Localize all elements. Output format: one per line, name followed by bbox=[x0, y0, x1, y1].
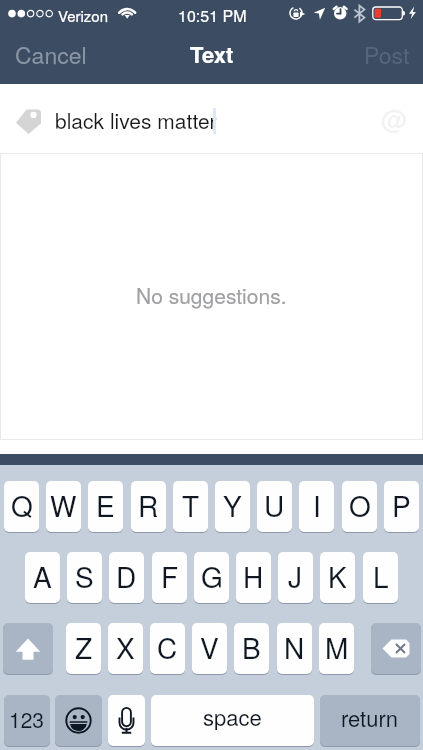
button[interactable]: Backspace bbox=[371, 623, 421, 674]
button[interactable]: space bbox=[151, 695, 314, 746]
staticText: Y bbox=[223, 485, 242, 525]
button[interactable]: Emoji bbox=[55, 695, 102, 746]
staticText: C bbox=[157, 627, 178, 667]
staticText: U bbox=[264, 485, 285, 525]
button[interactable]: F bbox=[152, 552, 187, 603]
staticText: K bbox=[328, 556, 347, 596]
button[interactable]: S bbox=[67, 552, 102, 603]
staticText: N bbox=[284, 627, 305, 667]
button[interactable]: Post bbox=[352, 28, 423, 81]
button[interactable]: A bbox=[25, 552, 60, 603]
button[interactable]: K bbox=[320, 552, 355, 603]
button[interactable]: P bbox=[384, 481, 419, 532]
staticText: Z bbox=[75, 627, 93, 667]
button[interactable]: Cancel bbox=[0, 28, 99, 81]
staticText: P bbox=[392, 485, 411, 525]
staticText: G bbox=[201, 556, 223, 596]
button[interactable]: J bbox=[278, 552, 313, 603]
staticText: E bbox=[96, 485, 115, 525]
staticText: X bbox=[116, 627, 135, 667]
staticText: Q bbox=[11, 485, 33, 525]
button[interactable]: Dictate bbox=[108, 695, 145, 746]
button[interactable]: C bbox=[150, 623, 185, 674]
staticText: T bbox=[182, 485, 200, 525]
staticText: Cancel bbox=[15, 38, 87, 71]
button[interactable]: Y bbox=[215, 481, 250, 532]
staticText: black lives matter bbox=[55, 105, 217, 135]
button[interactable]: Shift bbox=[3, 623, 53, 674]
button[interactable]: D bbox=[109, 552, 144, 603]
button[interactable]: 123 bbox=[4, 695, 50, 746]
button[interactable]: O bbox=[342, 481, 377, 532]
staticText: S bbox=[75, 556, 94, 596]
staticText: No suggestions. bbox=[136, 280, 287, 310]
staticText: W bbox=[50, 485, 77, 525]
staticText: Post bbox=[364, 38, 410, 71]
button[interactable]: W bbox=[46, 481, 81, 532]
staticText: Text bbox=[190, 38, 234, 70]
staticText: @ bbox=[381, 99, 408, 133]
button[interactable]: Q bbox=[4, 481, 39, 532]
button[interactable]: M bbox=[319, 623, 354, 674]
button[interactable]: Mention bbox=[377, 99, 411, 133]
staticText: R bbox=[138, 485, 159, 525]
button[interactable]: E bbox=[88, 481, 123, 532]
staticText: A bbox=[33, 556, 52, 596]
staticText: I bbox=[313, 485, 321, 525]
staticText: M bbox=[325, 627, 349, 667]
button[interactable]: V bbox=[192, 623, 227, 674]
other: Tag bbox=[16, 109, 41, 134]
staticText: return bbox=[341, 702, 399, 734]
staticText: F bbox=[161, 556, 179, 596]
staticText: space bbox=[203, 701, 262, 733]
button[interactable]: return bbox=[320, 695, 420, 746]
button[interactable]: I bbox=[299, 481, 334, 532]
staticText: D bbox=[116, 556, 137, 596]
button[interactable]: L bbox=[363, 552, 398, 603]
staticText: H bbox=[243, 556, 264, 596]
button[interactable]: H bbox=[236, 552, 271, 603]
button[interactable]: B bbox=[234, 623, 269, 674]
button[interactable]: R bbox=[131, 481, 166, 532]
staticText: V bbox=[200, 627, 219, 667]
button[interactable]: U bbox=[257, 481, 292, 532]
button[interactable]: N bbox=[277, 623, 312, 674]
staticText: B bbox=[242, 627, 261, 667]
staticText: J bbox=[288, 556, 303, 596]
staticText: 123 bbox=[9, 704, 45, 734]
button[interactable]: X bbox=[108, 623, 143, 674]
button[interactable]: G bbox=[194, 552, 229, 603]
staticText: O bbox=[349, 485, 371, 525]
staticText: 10:51 PM bbox=[178, 4, 247, 27]
staticText: Verizon bbox=[58, 5, 109, 26]
staticText: L bbox=[373, 556, 389, 596]
button[interactable]: Z bbox=[66, 623, 101, 674]
button[interactable]: T bbox=[173, 481, 208, 532]
